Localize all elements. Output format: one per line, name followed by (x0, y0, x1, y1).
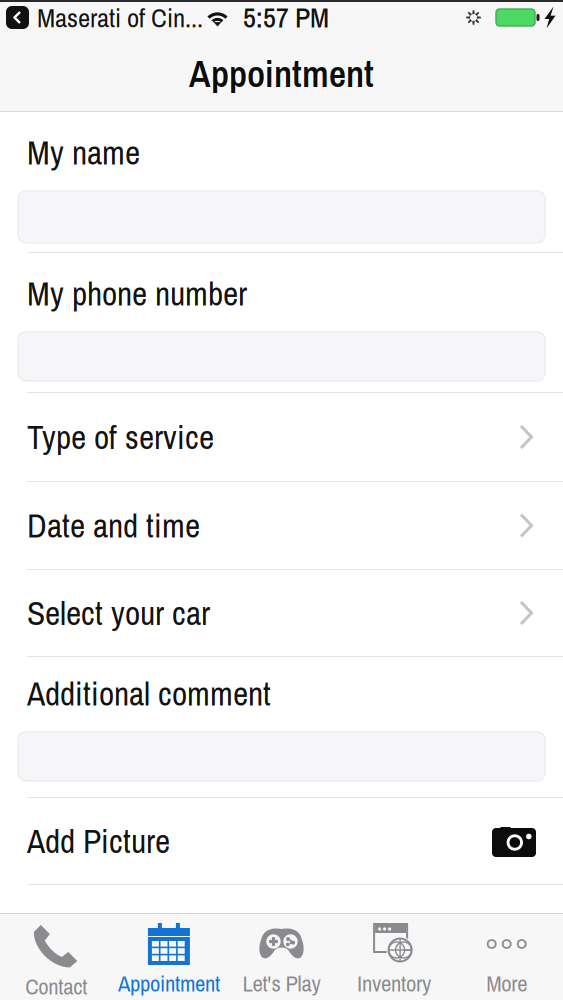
button[interactable]: Inventory (338, 913, 450, 1000)
staticText: Let's Play (242, 968, 320, 998)
button[interactable]: Type of service (0, 393, 563, 481)
button[interactable]: Appointment (113, 913, 225, 1000)
staticText: More (486, 968, 527, 998)
staticText: Maserati of Cin... (37, 0, 203, 35)
staticText: Inventory (357, 968, 431, 998)
staticText: Date and time (27, 503, 200, 548)
staticText: My name (27, 130, 140, 175)
button[interactable]: More (450, 913, 563, 1000)
button[interactable]: Contact (0, 913, 113, 1000)
staticText: 5:57 PM (243, 0, 329, 36)
staticText: Select your car (27, 591, 210, 635)
button[interactable]: Add Picture (0, 798, 563, 884)
staticText: Additional comment (27, 671, 271, 716)
button[interactable]: Let's Play (225, 913, 338, 1000)
staticText: Type of service (27, 415, 214, 459)
button[interactable]: Date and time (0, 482, 563, 569)
staticText: Appointment (189, 48, 374, 99)
staticText: Appointment (118, 968, 220, 998)
staticText: Add Picture (27, 819, 170, 863)
staticText: My phone number (27, 271, 247, 316)
staticText: Contact (25, 971, 87, 1000)
button[interactable]: Select your car (0, 570, 563, 656)
